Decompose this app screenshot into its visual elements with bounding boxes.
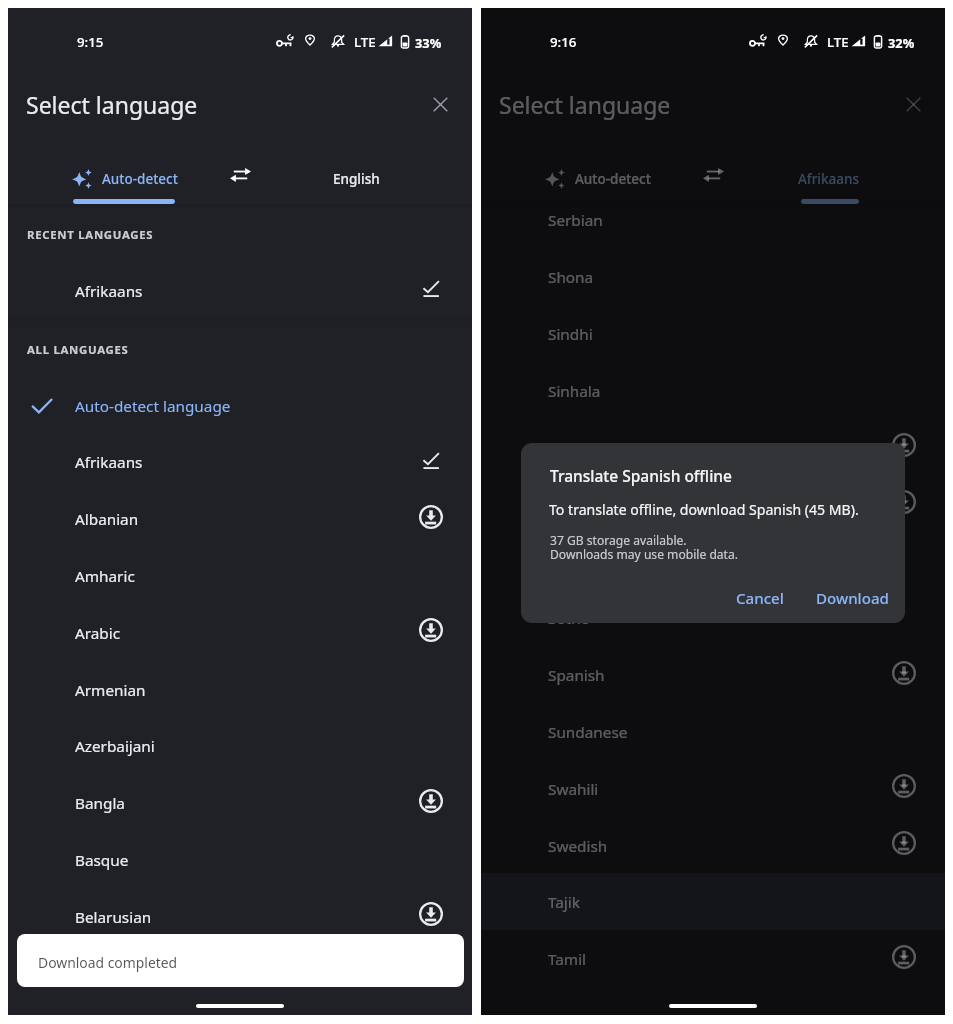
button[interactable] (481, 305, 945, 362)
staticText: Downloads may use mobile data. (550, 546, 738, 562)
button[interactable] (8, 831, 472, 888)
staticText: Download completed (38, 953, 178, 972)
staticText: Download (816, 588, 889, 609)
button[interactable] (481, 930, 945, 987)
button[interactable] (8, 717, 472, 774)
button[interactable]: Download completed (17, 934, 464, 987)
staticText: Auto-detect language (75, 396, 231, 417)
button[interactable] (8, 433, 472, 490)
button[interactable] (8, 262, 472, 319)
staticText: Sinhala (548, 381, 601, 402)
staticText: 37 GB storage available. (550, 532, 687, 548)
button[interactable] (481, 191, 945, 248)
staticText: 32% (888, 34, 915, 51)
staticText: Slovak (548, 438, 594, 459)
staticText: ALL LANGUAGES (27, 342, 129, 358)
staticText: Swahili (548, 779, 599, 800)
button[interactable] (481, 248, 945, 305)
button[interactable] (481, 646, 945, 703)
staticText: Swedish (548, 836, 608, 857)
button[interactable] (481, 532, 945, 589)
staticText: Spanish (548, 665, 605, 686)
staticText: 33% (415, 34, 442, 51)
staticText: Auto-detect (575, 170, 651, 188)
button[interactable] (8, 490, 472, 547)
button[interactable]: Cancel (724, 580, 795, 616)
button[interactable] (481, 476, 945, 533)
button[interactable] (481, 873, 945, 930)
staticText: Slovenian (548, 495, 618, 516)
button[interactable] (481, 760, 945, 817)
staticText: Amharic (75, 566, 135, 587)
button[interactable] (481, 419, 945, 476)
staticText: Somali (548, 551, 597, 572)
button[interactable] (481, 362, 945, 419)
staticText: Sundanese (548, 722, 628, 743)
button[interactable] (481, 703, 945, 760)
staticText: Afrikaans (75, 281, 143, 302)
button[interactable] (8, 377, 472, 434)
button[interactable]: Download (805, 580, 899, 616)
button[interactable] (8, 547, 472, 604)
button[interactable] (8, 888, 472, 945)
staticText: Auto-detect (102, 170, 178, 188)
staticText: RECENT LANGUAGES (27, 227, 154, 243)
button[interactable] (8, 604, 472, 661)
button[interactable] (771, 155, 891, 203)
staticText: LTE (827, 33, 849, 51)
staticText: Sotho (548, 608, 590, 629)
button[interactable]: Close (892, 83, 934, 125)
staticText: Select language (26, 89, 198, 120)
button[interactable]: Close (419, 83, 461, 125)
staticText: Bangla (75, 793, 125, 814)
staticText: Arabic (75, 623, 121, 644)
staticText: Sindhi (548, 324, 593, 345)
button[interactable] (481, 589, 945, 646)
staticText: Translate Spanish offline (550, 465, 732, 486)
button[interactable] (481, 817, 945, 874)
staticText: Serbian (548, 210, 603, 231)
staticText: Afrikaans (798, 170, 860, 188)
staticText: Basque (75, 850, 129, 871)
staticText: Armenian (75, 680, 146, 701)
staticText: LTE (354, 33, 376, 51)
staticText: 9:16 (550, 33, 577, 51)
staticText: Belarusian (75, 907, 152, 928)
button[interactable] (8, 661, 472, 718)
staticText: 9:15 (77, 33, 104, 51)
staticText: Shona (548, 267, 594, 288)
staticText: Tamil (548, 949, 587, 970)
staticText: Afrikaans (75, 452, 143, 473)
staticText: Cancel (736, 588, 784, 609)
button[interactable] (537, 155, 667, 203)
button[interactable] (298, 155, 418, 203)
button[interactable]: Swap languages (691, 155, 737, 201)
button[interactable] (8, 774, 472, 831)
button[interactable] (64, 155, 194, 203)
staticText: To translate offline, download Spanish (… (549, 500, 859, 519)
button[interactable]: Swap languages (218, 155, 264, 201)
staticText: Azerbaijani (75, 736, 155, 757)
staticText: English (333, 170, 380, 188)
staticText: Tajik (548, 892, 580, 913)
staticText: Albanian (75, 509, 139, 530)
staticText: Select language (499, 89, 671, 120)
